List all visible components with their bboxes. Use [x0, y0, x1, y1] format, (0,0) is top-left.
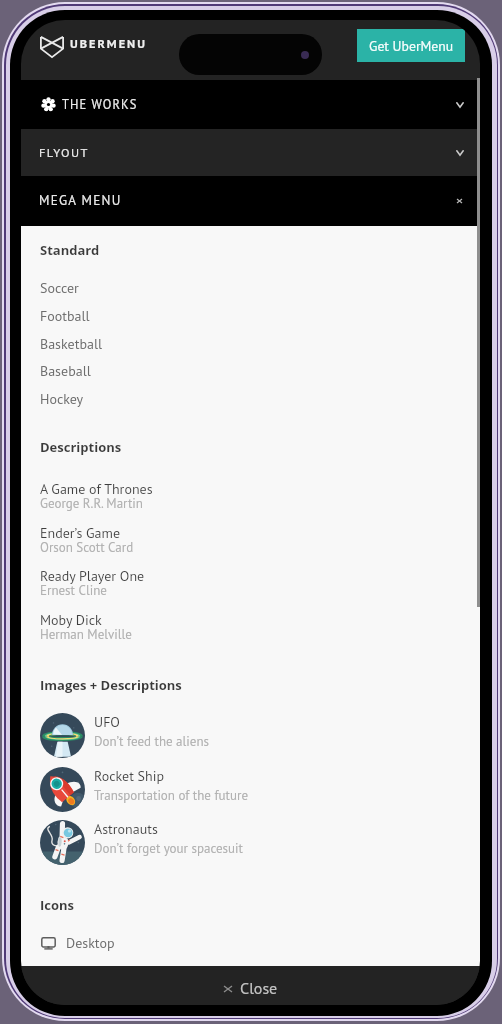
staticText: Moby Dick — [40, 611, 102, 629]
staticText: FLYOUT — [39, 144, 89, 160]
button[interactable]: Images + Descriptions — [40, 675, 300, 695]
staticText: Ender’s Game — [40, 524, 121, 542]
staticText: Images + Descriptions — [40, 676, 182, 694]
button[interactable]: Descriptions — [40, 437, 300, 457]
staticText: Desktop — [66, 934, 115, 952]
staticText: Astronauts — [94, 820, 158, 838]
staticText: Standard — [40, 241, 100, 259]
staticText: George R.R. Martin — [40, 495, 143, 512]
other: Close menu — [457, 199, 462, 203]
button[interactable]: UFO — [21, 713, 480, 759]
staticText: Don’t forget your spacesuit — [94, 840, 243, 857]
staticText: A Game of Thrones — [40, 480, 153, 498]
staticText: Descriptions — [40, 438, 122, 456]
staticText: Rocket Ship — [94, 767, 165, 785]
button[interactable]: FLYOUT — [21, 129, 480, 177]
button[interactable]: Ready Player One — [40, 565, 340, 603]
other: Close — [224, 986, 232, 992]
button[interactable]: Basketball — [40, 334, 300, 354]
button[interactable]: Rocket Ship — [21, 767, 480, 813]
button[interactable]: Standard — [40, 240, 300, 260]
button[interactable]: UBERMENU — [40, 28, 147, 66]
button[interactable]: Soccer — [40, 278, 300, 298]
other: Expand — [456, 150, 464, 156]
staticText: Icons — [40, 896, 75, 914]
button[interactable]: Baseball — [40, 361, 300, 381]
staticText: UFO — [94, 713, 120, 731]
staticText: Hockey — [40, 390, 84, 408]
button[interactable]: Hockey — [40, 389, 300, 409]
button[interactable]: Get UberMenu — [357, 29, 465, 62]
staticText: THE WORKS — [62, 96, 138, 112]
staticText: Ernest Cline — [40, 582, 107, 599]
staticText: Baseball — [40, 362, 91, 380]
staticText: Basketball — [40, 335, 103, 353]
staticText: UBERMENU — [70, 35, 147, 51]
button[interactable]: A Game of Thrones — [40, 478, 340, 516]
button[interactable]: Astronauts — [21, 820, 480, 866]
button[interactable]: MEGA MENU — [21, 176, 480, 226]
button[interactable]: Football — [40, 306, 300, 326]
staticText: Close — [240, 978, 278, 999]
staticText: Orson Scott Card — [40, 539, 134, 556]
staticText: Transportation of the future — [94, 787, 249, 804]
button[interactable]: Icons — [40, 895, 300, 915]
button[interactable]: THE WORKS — [21, 80, 480, 129]
staticText: Football — [40, 307, 90, 325]
staticText: Ready Player One — [40, 567, 145, 585]
button[interactable]: Moby Dick — [40, 609, 340, 647]
button[interactable]: Desktop — [41, 932, 115, 954]
staticText: MEGA MENU — [39, 192, 122, 209]
other: Expand — [456, 102, 464, 108]
button[interactable]: Close — [21, 966, 480, 1005]
staticText: Herman Melville — [40, 626, 132, 643]
staticText: Get UberMenu — [369, 37, 454, 55]
staticText: Don’t feed the aliens — [94, 733, 210, 750]
staticText: Soccer — [40, 279, 79, 297]
button[interactable]: Ender’s Game — [40, 522, 340, 560]
